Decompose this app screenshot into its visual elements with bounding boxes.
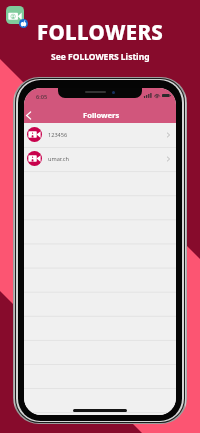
staticText: 6:05: [36, 93, 48, 101]
button[interactable]: umar.ch: [24, 147, 176, 170]
staticText: umar.ch: [48, 155, 69, 163]
button[interactable]: Back: [24, 108, 35, 122]
staticText: 123456: [48, 131, 68, 139]
staticText: FOLLOWERS: [37, 18, 164, 46]
button[interactable]: 123456: [24, 123, 176, 146]
staticText: See FOLLOWERS Listing: [51, 51, 150, 63]
staticText: Followers: [83, 110, 120, 120]
